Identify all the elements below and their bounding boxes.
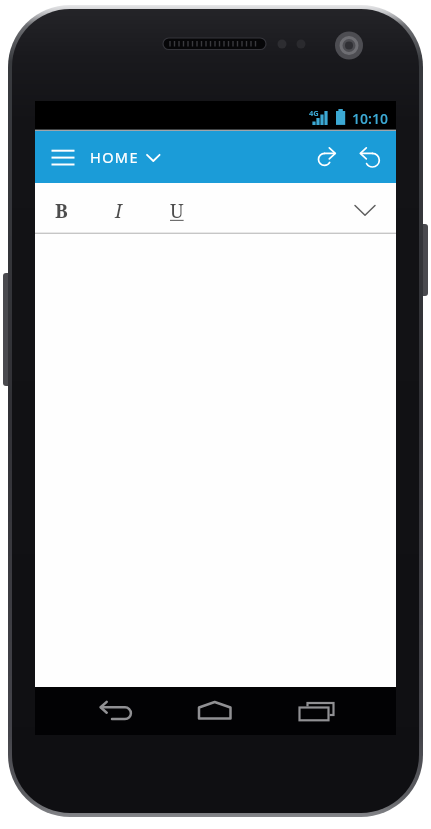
staticText: 4G [309,108,319,118]
staticText: B [55,198,68,224]
staticText: I [115,198,122,224]
staticText: 10:10 [352,109,388,128]
staticText: HOME [90,147,139,167]
staticText: U [170,198,184,224]
